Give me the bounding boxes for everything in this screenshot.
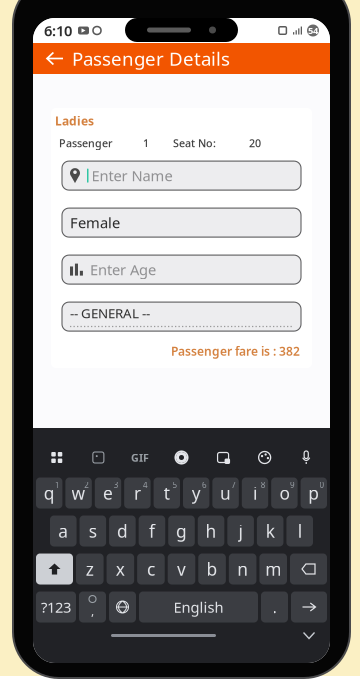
staticText: Passenger Details <box>72 46 230 71</box>
staticText: ?123 <box>41 597 71 617</box>
staticText: 3 <box>114 479 119 490</box>
staticText: Passenger fare is : 382 <box>171 343 300 359</box>
button[interactable]: Keyboard tool <box>36 442 78 472</box>
staticText: g <box>176 519 187 542</box>
button[interactable]: a <box>50 515 77 546</box>
staticText: 1 <box>143 136 149 150</box>
button[interactable]: v <box>168 553 195 584</box>
staticText: d <box>117 519 128 542</box>
button[interactable]: w <box>65 477 92 508</box>
button[interactable]: j <box>227 515 254 546</box>
staticText: 6:10 <box>44 21 72 40</box>
button[interactable]: t <box>154 477 180 508</box>
button[interactable]: c <box>137 553 165 584</box>
staticText: m <box>265 557 281 580</box>
button[interactable]: Keyboard tool <box>285 442 327 472</box>
button[interactable]: u <box>212 477 239 508</box>
staticText: w <box>72 481 86 504</box>
staticText: q <box>44 481 55 504</box>
staticText: 7 <box>231 479 236 490</box>
staticText: c <box>147 557 155 580</box>
button[interactable]: Passenger Details <box>33 43 240 74</box>
button[interactable]: Hide keyboard <box>291 623 327 647</box>
staticText: b <box>207 557 218 580</box>
staticText: l <box>298 519 302 542</box>
button[interactable]: g <box>168 515 195 546</box>
staticText: Female <box>70 213 120 232</box>
button[interactable]: e <box>95 477 121 508</box>
staticText: 0 <box>319 479 324 490</box>
staticText: o <box>279 481 289 504</box>
staticText: 2 <box>84 479 89 490</box>
button[interactable]: Backspace <box>290 553 327 584</box>
staticText: y <box>192 481 201 504</box>
button[interactable]: i <box>242 477 268 508</box>
button[interactable]: f <box>139 515 165 546</box>
button[interactable]: Keyboard tool <box>161 442 202 472</box>
staticText: -- GENERAL -- <box>70 304 150 322</box>
staticText: . <box>272 596 276 618</box>
staticText: 20 <box>249 136 261 150</box>
staticText: z <box>86 557 94 580</box>
staticText: 8 <box>261 479 266 490</box>
button[interactable]: ?123 <box>36 591 76 622</box>
staticText: k <box>266 519 275 542</box>
button[interactable]: Keyboard tool <box>78 442 119 472</box>
button[interactable]: b <box>198 553 226 584</box>
button[interactable]: Keyboard tool <box>244 442 285 472</box>
button[interactable]: x <box>107 553 134 584</box>
staticText: u <box>220 481 231 504</box>
staticText: t <box>164 481 170 504</box>
button[interactable]: s <box>80 515 106 546</box>
button[interactable]: p <box>301 477 327 508</box>
staticText: Enter Name <box>91 166 172 185</box>
staticText: h <box>206 519 217 542</box>
staticText: Passenger <box>59 136 113 150</box>
staticText: n <box>237 557 248 580</box>
button[interactable]: Change language <box>109 591 136 622</box>
staticText: i <box>253 481 257 504</box>
button[interactable]: Period <box>261 591 288 622</box>
button[interactable]: d <box>109 515 136 546</box>
staticText: f <box>149 519 155 542</box>
button[interactable]: y <box>183 477 209 508</box>
staticText: j <box>239 519 243 542</box>
staticText: Enter Age <box>90 260 156 279</box>
button[interactable]: English <box>139 591 258 622</box>
button[interactable]: Comma <box>79 591 106 622</box>
button[interactable]: k <box>257 515 283 546</box>
button[interactable]: Shift <box>36 553 73 584</box>
staticText: 9 <box>290 479 295 490</box>
button[interactable]: Keyboard tool <box>202 442 244 472</box>
button[interactable]: z <box>76 553 104 584</box>
staticText: 4 <box>143 479 148 490</box>
staticText: English <box>173 597 223 617</box>
button[interactable]: r <box>124 477 151 508</box>
staticText: a <box>58 519 68 542</box>
button[interactable]: Enter <box>291 591 327 622</box>
button[interactable]: q <box>36 477 62 508</box>
staticText: 5 <box>172 479 177 490</box>
button[interactable]: Enter Name <box>62 161 301 190</box>
staticText: v <box>177 557 186 580</box>
staticText: 54 <box>308 24 318 37</box>
button[interactable]: o <box>271 477 298 508</box>
staticText: Ladies <box>55 113 94 129</box>
staticText: p <box>308 481 319 504</box>
staticText: 6 <box>202 479 207 490</box>
staticText: Seat No: <box>173 136 216 150</box>
button[interactable]: l <box>286 515 313 546</box>
button[interactable]: Enter Age <box>62 255 301 284</box>
button[interactable]: Keyboard tool <box>119 442 161 472</box>
staticText: s <box>89 519 97 542</box>
staticText: 1 <box>55 479 60 490</box>
button[interactable]: n <box>229 553 256 584</box>
button[interactable]: -- GENERAL -- <box>62 302 301 331</box>
staticText: GIF <box>131 450 149 465</box>
staticText: , <box>91 602 94 618</box>
staticText: x <box>116 557 125 580</box>
button[interactable]: Female <box>62 208 301 237</box>
button[interactable]: h <box>198 515 224 546</box>
button[interactable]: m <box>259 553 287 584</box>
staticText: r <box>134 481 141 504</box>
